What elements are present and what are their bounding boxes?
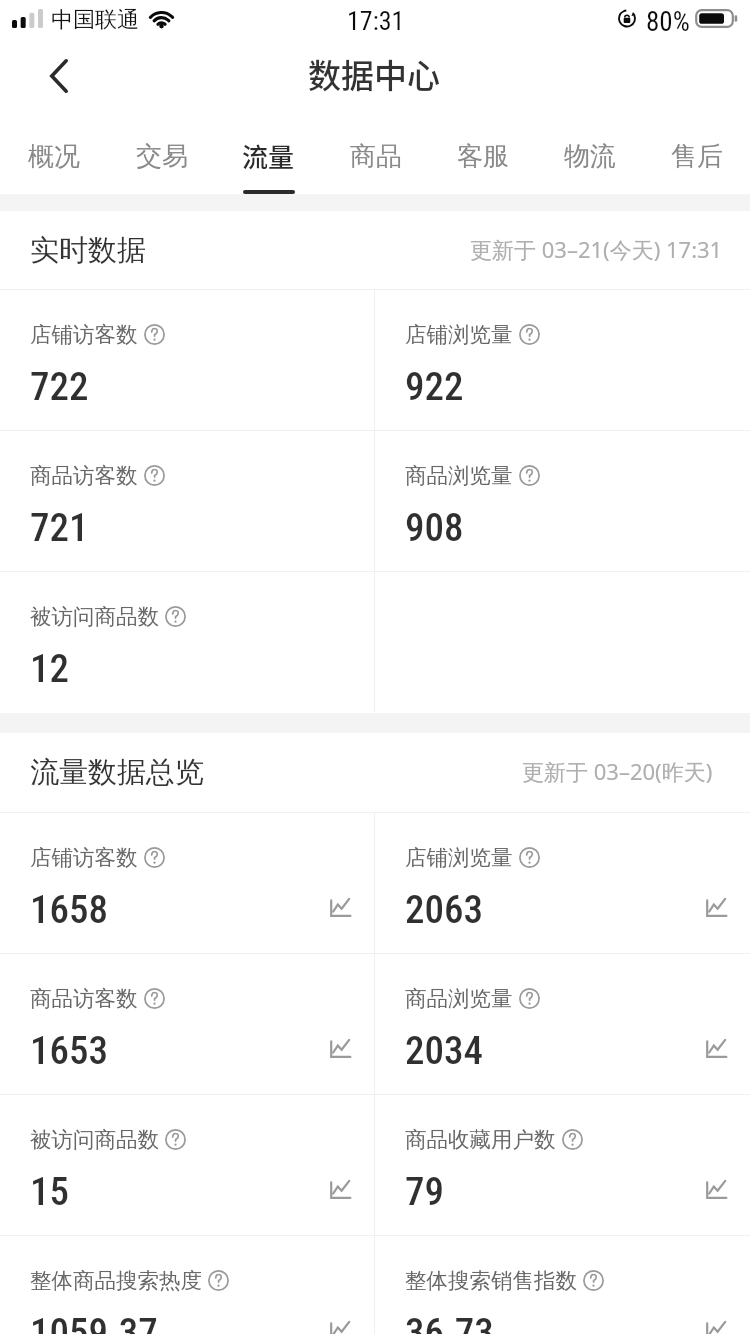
staticText: 整体搜索销售指数 (405, 1267, 577, 1294)
button[interactable]: 售后 (643, 116, 750, 194)
button[interactable]: 店铺浏览量 趋势图 (706, 898, 727, 917)
staticText: 1653 (30, 1028, 108, 1074)
button[interactable]: 店铺访客数 指标说明 (144, 847, 165, 868)
staticText: 实时数据 (30, 232, 146, 269)
button[interactable]: 店铺浏览量 指标说明 (519, 324, 540, 345)
staticText: 商品收藏用户数 (405, 1126, 556, 1153)
staticText: 722 (30, 364, 89, 410)
button[interactable]: 整体搜索销售指数 趋势图 (706, 1321, 727, 1334)
button[interactable]: 商品访客数 趋势图 (330, 1039, 351, 1058)
staticText: 概况 (28, 140, 80, 173)
button[interactable]: 被访问商品数 (0, 572, 374, 712)
staticText: 店铺访客数 (30, 321, 138, 348)
button[interactable]: 商品浏览量 指标说明 (519, 465, 540, 486)
button[interactable]: 客服 (429, 116, 536, 194)
staticText: 2034 (405, 1028, 483, 1074)
button[interactable]: 店铺访客数 趋势图 (330, 898, 351, 917)
staticText: 数据中心 (308, 50, 440, 98)
button[interactable]: 物流 (536, 116, 643, 194)
button[interactable]: 店铺浏览量 (375, 290, 750, 430)
button[interactable]: 商品浏览量 指标说明 (519, 988, 540, 1009)
staticText: 36.73 (405, 1310, 494, 1334)
button[interactable]: 流量 (215, 116, 322, 194)
staticText: 80% (646, 6, 690, 38)
button[interactable]: Back (0, 44, 110, 116)
button[interactable]: 被访问商品数 指标说明 (165, 1129, 186, 1150)
staticText: 721 (30, 505, 89, 551)
button[interactable]: 商品访客数 (0, 954, 374, 1094)
staticText: 1059.37 (30, 1310, 158, 1334)
staticText: 2063 (405, 887, 483, 933)
staticText: 被访问商品数 (30, 603, 159, 630)
staticText: 商品浏览量 (405, 985, 513, 1012)
staticText: 12 (30, 646, 69, 692)
button[interactable]: 商品收藏用户数 趋势图 (706, 1180, 727, 1199)
button[interactable]: 商品浏览量 趋势图 (706, 1039, 727, 1058)
button[interactable]: 商品浏览量 (375, 954, 750, 1094)
button[interactable]: 店铺访客数 (0, 290, 374, 430)
staticText: 15 (30, 1169, 69, 1215)
staticText: 1658 (30, 887, 108, 933)
staticText: 店铺浏览量 (405, 844, 513, 871)
button[interactable]: 被访问商品数 (0, 1095, 374, 1235)
staticText: 商品访客数 (30, 985, 138, 1012)
button[interactable]: 被访问商品数 指标说明 (165, 606, 186, 627)
staticText: 商品浏览量 (405, 462, 513, 489)
staticText: 售后 (671, 140, 723, 173)
staticText: 17:31 (347, 6, 405, 36)
staticText: 商品 (350, 140, 402, 173)
staticText: 被访问商品数 (30, 1126, 159, 1153)
button[interactable]: 商品访客数 指标说明 (144, 988, 165, 1009)
button[interactable]: 整体商品搜索热度 指标说明 (208, 1270, 229, 1291)
button[interactable]: 交易 (108, 116, 215, 194)
staticText: 922 (405, 364, 464, 410)
button[interactable]: 店铺访客数 (0, 813, 374, 953)
staticText: 整体商品搜索热度 (30, 1267, 202, 1294)
button[interactable]: 被访问商品数 趋势图 (330, 1180, 351, 1199)
button[interactable]: 商品浏览量 (375, 431, 750, 571)
button[interactable]: 整体商品搜索热度 趋势图 (330, 1321, 351, 1334)
button[interactable]: 店铺访客数 指标说明 (144, 324, 165, 345)
button[interactable]: 商品收藏用户数 (375, 1095, 750, 1235)
staticText: 更新于 03–20(昨天) (522, 756, 713, 786)
button[interactable]: 商品访客数 指标说明 (144, 465, 165, 486)
button[interactable]: 店铺浏览量 指标说明 (519, 847, 540, 868)
staticText: 79 (405, 1169, 444, 1215)
staticText: 908 (405, 505, 464, 551)
staticText: 流量 (242, 137, 295, 175)
button[interactable]: 概况 (0, 116, 108, 194)
staticText: 中国联通 (51, 6, 139, 34)
staticText: 客服 (457, 140, 509, 173)
staticText: 物流 (564, 140, 616, 173)
button[interactable]: 商品访客数 (0, 431, 374, 571)
button[interactable]: 商品收藏用户数 指标说明 (562, 1129, 583, 1150)
staticText: 店铺浏览量 (405, 321, 513, 348)
button[interactable]: 整体商品搜索热度 (0, 1236, 374, 1334)
staticText: 商品访客数 (30, 462, 138, 489)
button[interactable]: 店铺浏览量 (375, 813, 750, 953)
staticText: 更新于 03–21(今天) 17:31 (470, 234, 723, 264)
button[interactable]: 商品 (322, 116, 429, 194)
staticText: 店铺访客数 (30, 844, 138, 871)
button[interactable]: 整体搜索销售指数 指标说明 (583, 1270, 604, 1291)
button[interactable]: 整体搜索销售指数 (375, 1236, 750, 1334)
staticText: 流量数据总览 (30, 754, 204, 791)
staticText: 交易 (136, 140, 188, 173)
